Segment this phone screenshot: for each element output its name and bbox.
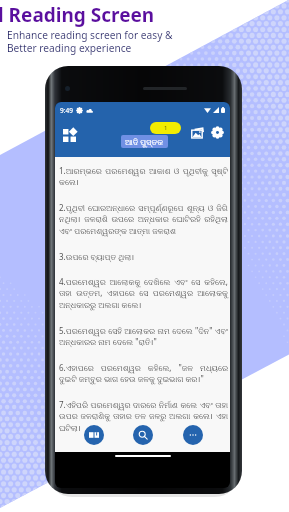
button[interactable]: Dashboard: [61, 127, 77, 143]
staticText: 3.ଉପରେ ବ୍ୟାପ୍ତ ଥିଲା।: [59, 251, 228, 262]
staticText: Enhance reading screen for easy & Better…: [7, 28, 173, 55]
button[interactable]: More options: [183, 425, 203, 445]
button[interactable]: Settings: [210, 125, 225, 140]
button[interactable]: Images: [190, 125, 205, 140]
button[interactable]: Search: [133, 425, 153, 445]
staticText: 7.ଏହିପରି ପରମେଶ୍ୱର ଦାରରେ ନିର୍ମାଣ କଲେ ଏବଂ …: [59, 399, 228, 434]
staticText: 9:49: [60, 106, 73, 115]
button[interactable]: 1: [150, 122, 181, 134]
staticText: 5.ପରମେଶ୍ୱର ସେହି ଆଲୋକର ନାମ ଦେଲେ "ଦିନ" ଏବଂ…: [59, 325, 228, 348]
button[interactable]: Bookmarks: [84, 425, 104, 445]
staticText: 6.ଏହାପରେ ପରମେଶ୍ୱର କହିଲେ, "ଜଳ ମଧ୍ୟରେ ଦୁଇଟ…: [59, 362, 228, 385]
staticText: 1: [164, 124, 168, 132]
button[interactable]: ଆଦି ପୁସ୍ତକ: [121, 135, 168, 148]
staticText: 1.ଆରମ୍ଭରେ ପରମେଶ୍ୱର ଆକାଶ ଓ ପୃଥିବୀକୁ ସୃଷ୍ଟ…: [59, 165, 228, 188]
staticText: 4.ପରମେଶ୍ୱର ଆଲୋକକୁ ଦେଖିଲେ ଏବଂ ସେ କହିଲେ, ତ…: [59, 276, 228, 311]
staticText: 2.ପୃଥିବୀ ଘୋରଅନ୍ଧାରେ ସମ୍ପୂର୍ଣ୍ଣରୂପେ ଶୂନ୍ୟ…: [59, 202, 228, 237]
staticText: ଆଦି ପୁସ୍ତକ: [125, 136, 164, 147]
staticText: l Reading Screen: [0, 2, 155, 28]
